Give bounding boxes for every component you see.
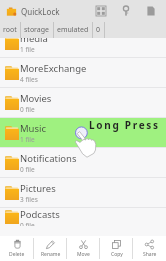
button[interactable]: Rename [34, 236, 67, 261]
button[interactable]: MoreExchange [0, 58, 166, 87]
staticText: Rename [41, 251, 61, 258]
button[interactable]: media [0, 38, 166, 57]
button[interactable]: Share [133, 236, 166, 261]
button[interactable]: 0 [93, 22, 104, 38]
staticText: Move [77, 251, 90, 258]
staticText: emulated [57, 25, 89, 35]
button[interactable]: storage [21, 22, 53, 38]
button[interactable]: Pictures [0, 178, 166, 207]
button[interactable]: New file [143, 3, 159, 19]
staticText: 0 file [20, 165, 35, 174]
staticText: root [3, 25, 17, 35]
staticText: storage [24, 25, 50, 35]
staticText: Share [143, 251, 157, 258]
staticText: 3 files [20, 195, 38, 204]
staticText: 0 file [20, 105, 35, 114]
button[interactable]: Notifications [0, 148, 166, 177]
button[interactable]: Movies [0, 88, 166, 117]
button[interactable]: Podcasts [0, 208, 166, 226]
staticText: Notifications [20, 152, 77, 165]
staticText: Podcasts [20, 208, 60, 221]
staticText: Delete [9, 251, 25, 258]
staticText: Copy [111, 251, 123, 258]
staticText: media [20, 38, 48, 45]
staticText: Long Press [89, 118, 160, 132]
staticText: 0 [96, 25, 101, 35]
staticText: Pictures [20, 182, 56, 195]
staticText: MoreExchange [20, 62, 87, 75]
button[interactable]: Delete [0, 236, 34, 261]
staticText: 0 file [20, 221, 35, 226]
button[interactable]: Copy [100, 236, 133, 261]
staticText: Movies [20, 92, 52, 105]
button[interactable]: Move [67, 236, 100, 261]
staticText: 1 file [20, 135, 35, 144]
button[interactable]: root [0, 22, 20, 38]
staticText: 4 files [20, 75, 38, 84]
button[interactable]: Music [0, 118, 166, 147]
staticText: Music [20, 122, 47, 135]
button[interactable]: emulated [54, 22, 92, 38]
button[interactable]: Lock [118, 3, 134, 19]
button[interactable]: Grid view [93, 3, 109, 19]
staticText: 1 file [20, 45, 35, 54]
staticText: QuickLock [21, 6, 60, 17]
